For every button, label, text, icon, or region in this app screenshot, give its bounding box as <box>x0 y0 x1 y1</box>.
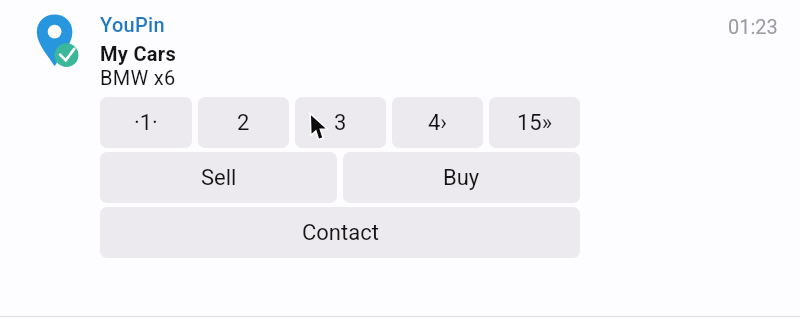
button[interactable]: Contact <box>100 207 580 258</box>
staticText: My Cars <box>100 42 177 65</box>
staticText: YouPin <box>100 13 165 36</box>
staticText: 15» <box>517 110 553 136</box>
staticText: 01:23 <box>728 15 778 38</box>
button[interactable]: 2 <box>198 97 289 148</box>
staticText: BMW x6 <box>100 66 176 89</box>
button[interactable]: Sell <box>100 152 337 203</box>
staticText: 4› <box>428 110 447 136</box>
button[interactable]: 3 <box>295 97 386 148</box>
button[interactable]: ·1· <box>100 97 192 148</box>
staticText: 2 <box>237 110 250 136</box>
staticText: Contact <box>302 220 379 246</box>
button[interactable]: 4› <box>392 97 483 148</box>
button[interactable]: 15» <box>489 97 580 148</box>
staticText: ·1· <box>134 110 158 136</box>
button[interactable]: Buy <box>343 152 580 203</box>
other: YouPin app icon <box>36 13 80 68</box>
staticText: 3 <box>334 110 347 136</box>
staticText: Buy <box>443 165 480 191</box>
staticText: Sell <box>201 165 237 191</box>
